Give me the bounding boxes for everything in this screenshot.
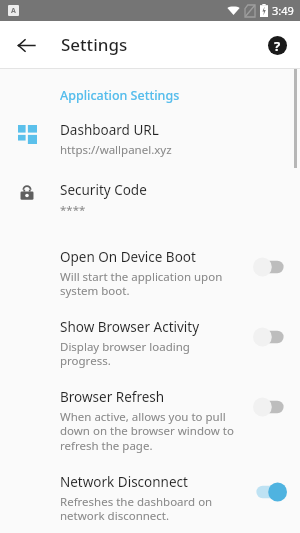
staticText: Show Browser Activity xyxy=(60,318,200,336)
staticText: Browser Refresh xyxy=(60,388,165,406)
staticText: A xyxy=(11,6,16,16)
button[interactable]: Dashboard URL xyxy=(0,121,300,158)
staticText: Display browser loading progress. xyxy=(60,339,190,369)
staticText: Will start the application upon system b… xyxy=(60,269,223,299)
button[interactable]: Security Code xyxy=(0,181,300,218)
staticText: When active, allows you to pull down on … xyxy=(60,409,234,454)
button[interactable]: Show Browser Activity xyxy=(0,318,300,369)
button[interactable]: Browser Refresh xyxy=(0,388,300,454)
button[interactable]: Network Disconnect xyxy=(0,473,300,524)
button[interactable]: Back xyxy=(8,27,44,63)
staticText: ? xyxy=(274,37,281,55)
staticText: **** xyxy=(60,202,86,218)
staticText: Refreshes the dashboard on network disco… xyxy=(60,494,213,524)
button[interactable]: On xyxy=(253,482,287,502)
button[interactable]: Off xyxy=(253,257,287,277)
staticText: Open On Device Boot xyxy=(60,248,196,266)
staticText: Network Disconnect xyxy=(60,473,188,491)
button[interactable]: Open On Device Boot xyxy=(0,248,300,299)
button[interactable]: Off xyxy=(253,397,287,417)
button[interactable]: Help xyxy=(260,28,294,62)
staticText: Application Settings xyxy=(60,87,180,104)
button[interactable]: Off xyxy=(253,327,287,347)
staticText: 3:49 xyxy=(272,3,294,18)
staticText: https://wallpanel.xyz xyxy=(60,142,172,158)
staticText: Security Code xyxy=(60,181,147,199)
staticText: Dashboard URL xyxy=(60,121,159,139)
staticText: Settings xyxy=(61,33,128,56)
